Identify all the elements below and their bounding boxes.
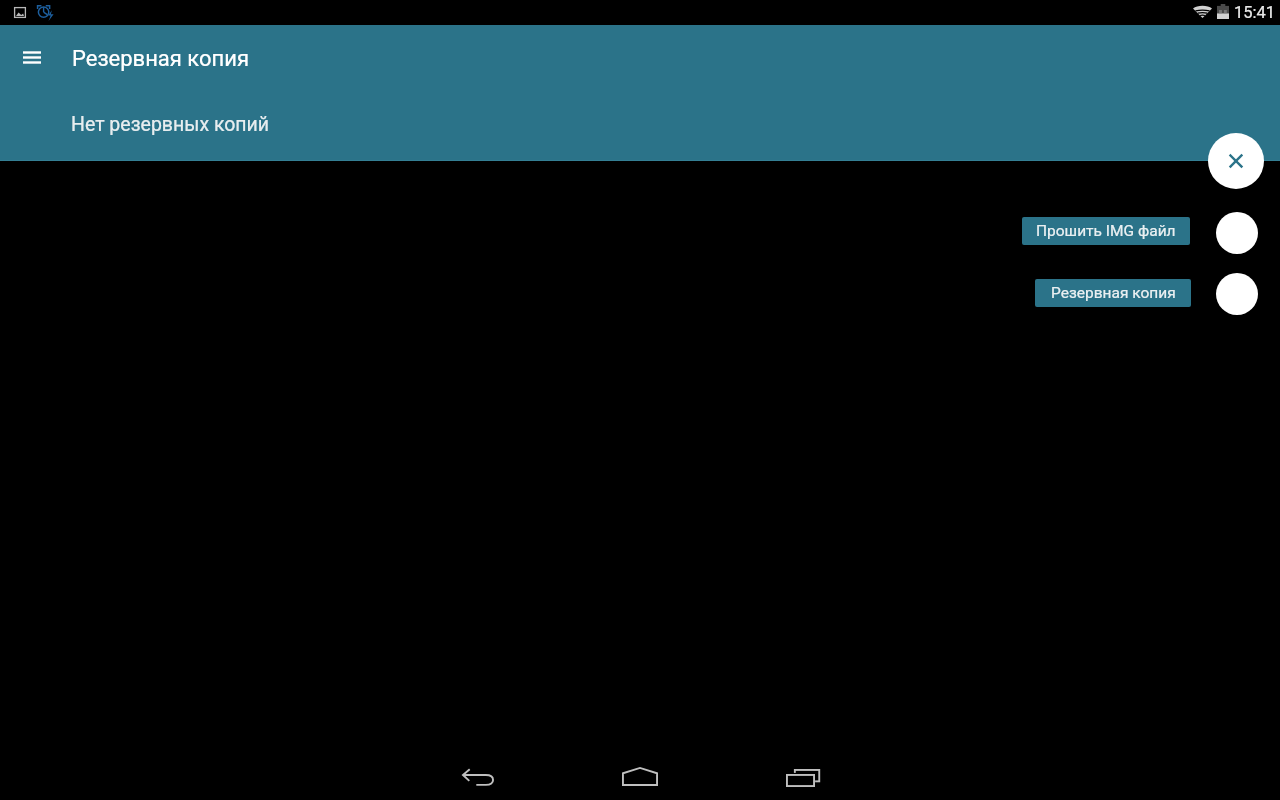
button[interactable]: Close actions menu [1208,133,1264,189]
button[interactable]: Home [608,753,672,800]
staticText: Нет резервных копий [71,113,270,136]
button[interactable]: Recent apps [771,753,835,800]
button[interactable]: Back [446,753,510,800]
button[interactable]: Create backup [1216,273,1258,315]
staticText: 15:41 [1234,3,1276,22]
button[interactable]: Flash IMG file [1216,212,1258,254]
staticText: Резервная копия [72,46,250,72]
button[interactable]: Прошить IMG файл [1022,217,1190,245]
staticText: Резервная копия [1051,284,1176,302]
button[interactable]: Open navigation menu [8,34,56,82]
staticText: Прошить IMG файл [1036,222,1176,240]
button[interactable]: Резервная копия [1035,279,1191,307]
